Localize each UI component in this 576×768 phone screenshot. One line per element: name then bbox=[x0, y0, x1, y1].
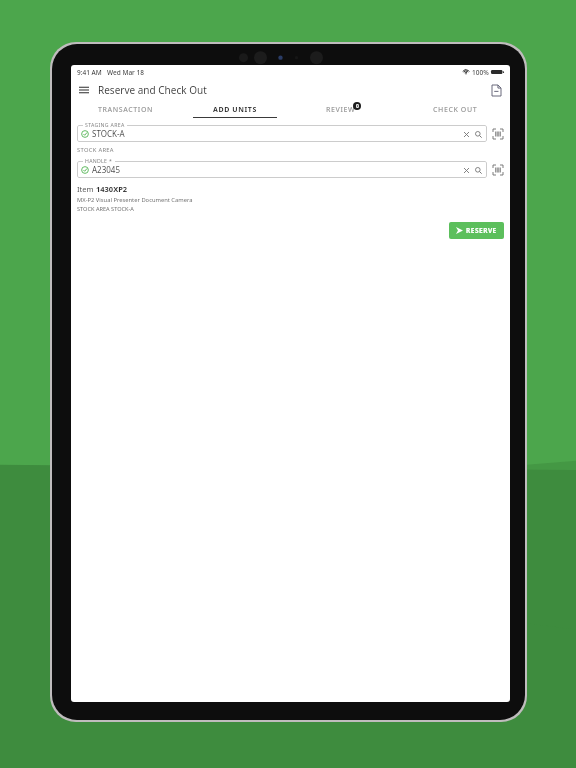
staticText: HANDLE * bbox=[85, 157, 113, 164]
button[interactable]: Scan barcode bbox=[491, 127, 504, 140]
button[interactable]: Clear bbox=[461, 129, 471, 139]
staticText: Reserve and Check Out bbox=[98, 83, 207, 97]
button[interactable]: Menu bbox=[76, 82, 92, 98]
staticText: 100% bbox=[472, 68, 489, 77]
button[interactable]: Search bbox=[473, 165, 483, 175]
staticText: ADD UNITS bbox=[213, 105, 257, 115]
button[interactable]: ADD UNITS bbox=[180, 101, 290, 118]
button[interactable]: CHECK OUT bbox=[400, 101, 510, 118]
staticText: TRANSACTION bbox=[98, 105, 154, 115]
staticText: REVIEW bbox=[326, 105, 356, 115]
button[interactable]: STOCK-A bbox=[77, 125, 487, 142]
button[interactable]: REVIEW bbox=[290, 101, 400, 118]
staticText: 9:41 AM bbox=[77, 68, 102, 77]
button[interactable]: Search bbox=[473, 129, 483, 139]
staticText: A23045 bbox=[92, 164, 120, 175]
staticText: STOCK-A bbox=[92, 128, 125, 139]
staticText: STAGING AREA bbox=[85, 121, 125, 128]
button[interactable]: Scan barcode bbox=[491, 163, 504, 176]
staticText: Wed Mar 18 bbox=[107, 68, 144, 77]
button[interactable]: Clear bbox=[461, 165, 471, 175]
staticText: STOCK AREA STOCK-A bbox=[77, 205, 134, 213]
staticText: MX-P2 Visual Presenter Document Camera bbox=[77, 196, 193, 204]
staticText: 1430XP2 bbox=[96, 184, 128, 194]
staticText: RESERVE bbox=[466, 226, 497, 235]
button[interactable]: TRANSACTION bbox=[71, 101, 180, 118]
button[interactable]: RESERVE bbox=[449, 222, 504, 239]
staticText: 0 bbox=[356, 103, 359, 110]
staticText: Item bbox=[77, 184, 96, 194]
button[interactable]: Document bbox=[488, 82, 504, 98]
staticText: CHECK OUT bbox=[433, 105, 478, 115]
button[interactable]: A23045 bbox=[77, 161, 487, 178]
staticText: STOCK AREA bbox=[77, 146, 114, 154]
